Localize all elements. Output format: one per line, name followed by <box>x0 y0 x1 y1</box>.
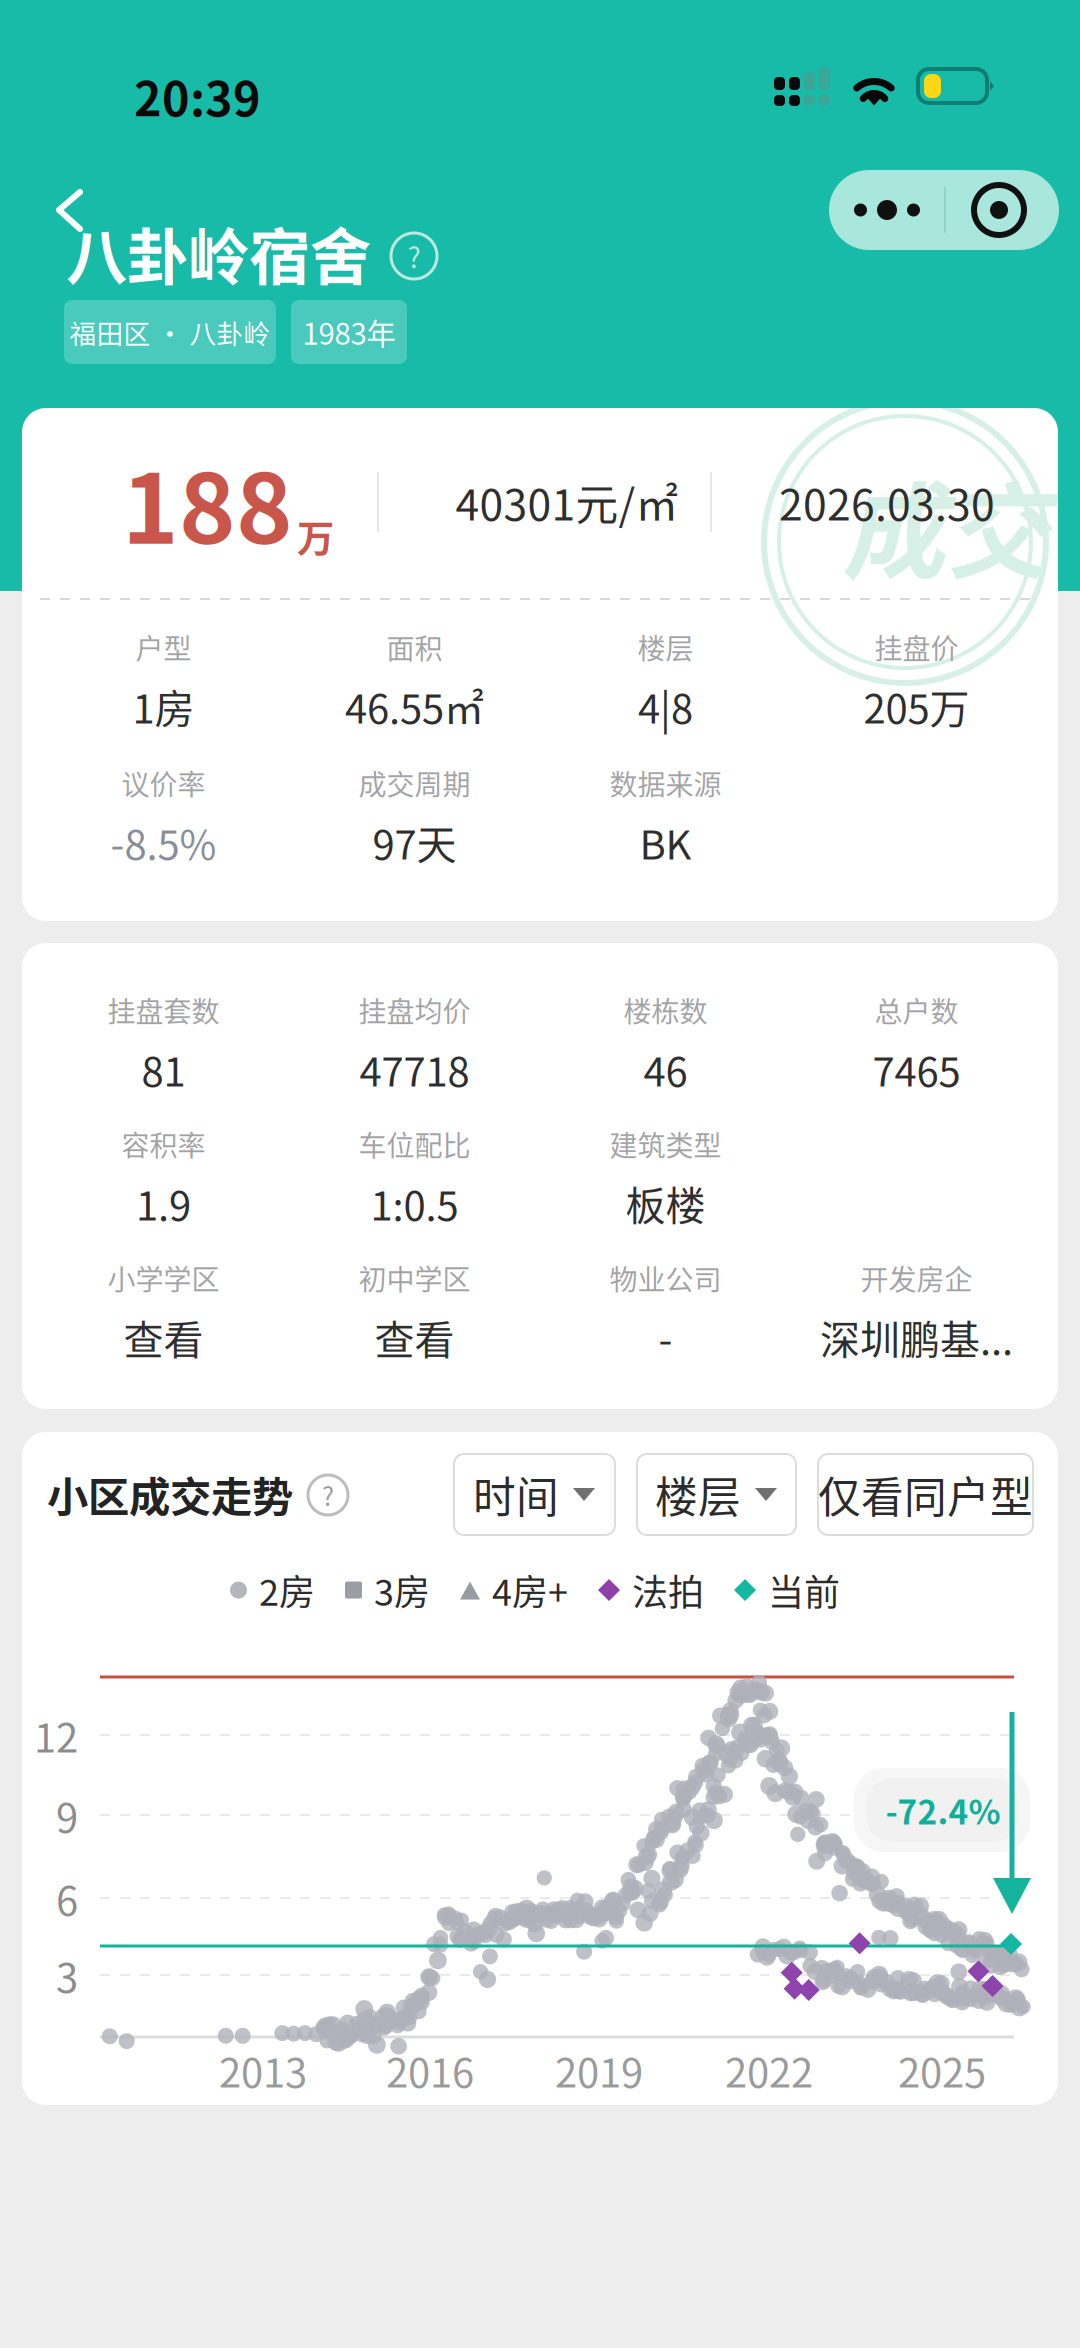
staticText: - <box>658 1308 672 1366</box>
button[interactable]: 楼层 <box>637 1454 796 1535</box>
staticText: 建筑类型 <box>609 1124 721 1164</box>
staticText: 小学学区 <box>107 1258 219 1298</box>
staticText: 容积率 <box>121 1124 205 1164</box>
staticText: 1.9 <box>136 1174 191 1232</box>
staticText: 法拍 <box>632 1564 704 1616</box>
staticText: 小区成交走势 <box>47 1464 293 1524</box>
staticText: 楼栋数 <box>623 990 707 1030</box>
staticText: 9 <box>56 1786 78 1844</box>
staticText: 40301元/㎡ <box>455 471 678 533</box>
staticText: 八卦岭宿舍 <box>66 209 371 297</box>
button[interactable]: 时间 <box>454 1454 615 1535</box>
staticText: 205万 <box>863 677 969 735</box>
staticText: 数据来源 <box>609 763 721 803</box>
staticText: 物业公司 <box>609 1258 721 1298</box>
staticText: 3房 <box>374 1564 430 1616</box>
staticText: -72.4% <box>885 1786 1000 1834</box>
staticText: 户型 <box>135 627 191 667</box>
staticText: 4房+ <box>492 1564 568 1616</box>
staticText: 1:0.5 <box>370 1174 458 1232</box>
staticText: ? <box>322 1477 334 1513</box>
staticText: 福田区 · 八卦岭 <box>69 313 270 351</box>
staticText: 楼层 <box>637 627 693 667</box>
staticText: ? <box>407 236 420 276</box>
button[interactable]: Back <box>40 180 100 240</box>
staticText: 97天 <box>372 813 456 871</box>
staticText: 1房 <box>132 677 194 735</box>
staticText: 万 <box>297 509 334 563</box>
staticText: 深圳鹏基... <box>820 1308 1013 1366</box>
staticText: 查看 <box>374 1308 454 1366</box>
staticText: 总户数 <box>874 990 958 1030</box>
staticText: 7465 <box>872 1040 960 1098</box>
staticText: 初中学区 <box>358 1258 470 1298</box>
staticText: 46.55㎡ <box>345 677 484 735</box>
staticText: 当前 <box>768 1564 840 1616</box>
button[interactable]: 仅看同户型 <box>818 1454 1033 1535</box>
staticText: 46 <box>643 1040 687 1098</box>
staticText: 时间 <box>473 1464 559 1525</box>
staticText: 议价率 <box>121 763 205 803</box>
staticText: 47718 <box>359 1040 469 1098</box>
staticText: 车位配比 <box>358 1124 470 1164</box>
staticText: BK <box>639 813 691 871</box>
staticText: 板楼 <box>625 1174 705 1232</box>
staticText: 仅看同户型 <box>818 1464 1033 1525</box>
staticText: 188 <box>122 432 293 571</box>
staticText: 开发房企 <box>860 1258 972 1298</box>
staticText: 2025 <box>898 2041 986 2099</box>
staticText: 查看 <box>123 1308 203 1366</box>
staticText: -8.5% <box>110 813 216 871</box>
staticText: 12 <box>34 1706 78 1764</box>
button[interactable]: Help <box>390 232 438 280</box>
staticText: 成交 <box>842 450 1050 600</box>
staticText: 2016 <box>386 2041 474 2099</box>
staticText: 挂盘套数 <box>107 990 219 1030</box>
button[interactable]: More and Close <box>829 170 1059 250</box>
staticText: 6 <box>56 1869 78 1927</box>
staticText: 2026.03.30 <box>779 471 995 533</box>
staticText: 81 <box>141 1040 185 1098</box>
staticText: 挂盘价 <box>874 627 958 667</box>
staticText: 楼层 <box>655 1464 741 1525</box>
staticText: 挂盘均价 <box>358 990 470 1030</box>
staticText: 2013 <box>219 2041 307 2099</box>
staticText: 20:39 <box>134 62 261 130</box>
staticText: 成交周期 <box>358 763 470 803</box>
staticText: 1983年 <box>302 311 395 353</box>
staticText: 面积 <box>386 627 442 667</box>
staticText: 2房 <box>259 1564 315 1616</box>
staticText: 4|8 <box>638 677 693 735</box>
staticText: 2019 <box>555 2041 643 2099</box>
staticText: 2022 <box>725 2041 813 2099</box>
staticText: 3 <box>56 1946 78 2004</box>
